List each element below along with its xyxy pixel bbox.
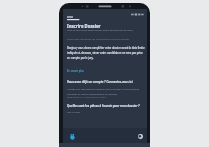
staticText: Utilisez vos identifiants habituels pour… [67, 87, 145, 95]
button[interactable]: Home [69, 133, 76, 140]
staticText: Tout ce que vous devez savoir avant de p… [67, 28, 134, 31]
staticText: Inscrire Dossier [67, 23, 101, 29]
staticText: Bonjour, vous devez compléter votre doss… [67, 46, 145, 59]
staticText: Quelles sont les pièces à fournir pour m… [67, 104, 140, 108]
button[interactable]: Menu [67, 16, 80, 21]
button[interactable]: Profile [137, 133, 144, 140]
staticText: Vous avez déjà un compte ? Connectez-vou… [67, 80, 133, 84]
staticText: Cette page rassemble les informations ut… [67, 37, 130, 40]
staticText: Mise à jour le 12 mars 2024 a 14h30 [67, 96, 106, 99]
staticText: En savoir plus [67, 69, 84, 73]
staticText: Voir la liste [67, 110, 80, 113]
